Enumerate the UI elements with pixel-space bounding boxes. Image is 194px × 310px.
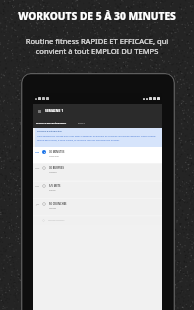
button[interactable]: MER: [33, 181, 162, 199]
button[interactable]: PLANS D'ENTRAÎNEMENT: [36, 121, 67, 124]
staticText: Gainage: [49, 207, 57, 209]
staticText: SUIVI: [78, 121, 85, 124]
staticText: 30 MINUTES: [49, 150, 65, 153]
staticText: PLANS D'ENTRAÎNEMENT: [36, 121, 67, 124]
staticText: Intensif: [49, 189, 56, 191]
staticText: LUN: [35, 151, 40, 154]
button[interactable]: Menu: [33, 104, 162, 117]
staticText: MAR: [35, 167, 40, 170]
staticText: WORKOUTS DE 5 À 30 MINUTES: [0, 9, 194, 23]
button[interactable]: LUN: [33, 147, 162, 163]
staticText: JEU: [36, 203, 40, 206]
staticText: 5/5 METS: [49, 184, 61, 187]
button[interactable]: Semaine d'introduction: [35, 128, 162, 147]
staticText: 30 BURPEES: [49, 166, 64, 169]
button[interactable]: MAR: [33, 163, 162, 181]
staticText: MER: [35, 185, 40, 188]
staticText: Cardio total: [49, 155, 59, 157]
staticText: Semaine terminée: [48, 219, 65, 222]
staticText: Semaine d'introduction: [37, 130, 62, 133]
staticText: 50 CRUNCHES: [49, 202, 67, 205]
staticText: Standard: [49, 171, 57, 173]
staticText: Cette semaine est conçue pour vous aider…: [37, 135, 159, 141]
button[interactable]: SUIVI: [78, 121, 85, 124]
staticText: SEMAINE 1: [45, 109, 64, 113]
staticText: Routine fitness RAPIDE ET EFFICACE, qui …: [17, 36, 177, 57]
button[interactable]: JEU: [33, 199, 162, 216]
